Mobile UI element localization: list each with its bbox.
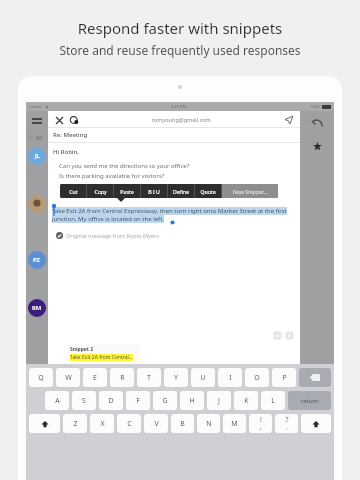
staticText: V — [154, 419, 159, 429]
button[interactable]: PZ — [28, 251, 46, 269]
button[interactable]: L — [261, 391, 285, 410]
staticText: RM — [32, 304, 42, 312]
staticText: tomyoung@gmail.com — [152, 116, 211, 123]
button[interactable]: Cut — [60, 184, 86, 198]
staticText: A — [55, 396, 60, 406]
button[interactable]: H — [180, 391, 204, 410]
button[interactable]: Define — [168, 184, 194, 198]
button[interactable]: JL — [28, 147, 46, 165]
button[interactable]: Copy — [87, 184, 113, 198]
staticText: Q — [38, 373, 44, 383]
button[interactable] — [28, 195, 46, 213]
button[interactable]: Menu — [32, 118, 42, 126]
staticText: Can you send me the directions to your o… — [59, 162, 190, 170]
button[interactable]: Paste — [114, 184, 140, 198]
button[interactable]: S — [72, 391, 96, 410]
staticText: New Snippet... — [233, 188, 268, 195]
staticText: Z — [73, 419, 78, 429]
staticText: junction. My office is located on the le… — [52, 215, 164, 223]
staticText: Quote — [200, 188, 216, 195]
button[interactable]: ! , — [249, 414, 272, 433]
button[interactable]: C — [117, 414, 141, 433]
button[interactable]: New Snippet... — [222, 184, 278, 198]
staticText: D — [108, 396, 114, 406]
button[interactable]: W — [56, 368, 80, 387]
staticText: Y — [174, 373, 178, 383]
staticText: U — [200, 373, 206, 383]
staticText: C — [127, 419, 132, 429]
staticText: Re: Meeting — [53, 131, 88, 139]
staticText: Is there parking available for visitors? — [59, 172, 165, 180]
button[interactable]: O — [245, 368, 269, 387]
button[interactable]: F — [126, 391, 150, 410]
staticText: Carrier — [29, 104, 43, 109]
button[interactable]: Y — [164, 368, 188, 387]
button[interactable]: V — [144, 414, 168, 433]
staticText: Define — [173, 188, 189, 195]
staticText: PZ — [33, 256, 41, 264]
button[interactable]: A — [45, 391, 69, 410]
staticText: Take Exit 2A from Central... — [70, 354, 133, 361]
button[interactable]: U — [191, 368, 215, 387]
staticText: X — [100, 419, 105, 429]
button[interactable]: RM — [28, 299, 46, 317]
button[interactable]: Q — [29, 368, 53, 387]
button[interactable]: Attach — [68, 114, 80, 126]
button[interactable]: Z — [63, 414, 87, 433]
button[interactable]: I — [218, 368, 242, 387]
staticText: Take Exit 2A from Central Expressway, th… — [52, 207, 287, 215]
button[interactable]: T — [137, 368, 161, 387]
staticText: return — [301, 397, 319, 405]
button[interactable]: Shift — [29, 414, 60, 433]
staticText: 2:35 PM — [171, 104, 187, 109]
button[interactable]: B — [171, 414, 194, 433]
staticText: Store and reuse frequently used response… — [0, 42, 360, 58]
staticText: G — [162, 396, 168, 406]
staticText: B — [180, 419, 185, 429]
button[interactable]: Indent — [273, 331, 282, 340]
staticText: E — [93, 373, 97, 383]
button[interactable]: return — [288, 391, 331, 410]
staticText: Paste — [120, 188, 134, 195]
staticText: 100% — [310, 104, 321, 109]
staticText: ! , — [260, 415, 262, 432]
staticText: J — [218, 396, 220, 406]
button[interactable]: Backspace — [299, 368, 331, 387]
button[interactable]: Format — [285, 331, 294, 340]
staticText: S — [82, 396, 86, 406]
button[interactable]: P — [272, 368, 296, 387]
staticText: Snippet 2 — [70, 346, 94, 353]
staticText: O — [254, 373, 260, 383]
button[interactable]: B I U — [141, 184, 167, 198]
button[interactable]: K — [234, 391, 258, 410]
staticText: I — [229, 373, 232, 383]
button[interactable]: Shift — [301, 414, 331, 433]
staticText: Hi Robin, — [53, 148, 79, 156]
button[interactable]: Snippet 2 — [70, 346, 138, 361]
button[interactable]: Close — [53, 114, 65, 126]
button[interactable]: Send — [283, 114, 295, 126]
staticText: Respond faster with snippets — [0, 18, 360, 38]
staticText: JL — [35, 152, 40, 160]
staticText: Original message from Robin Myers — [66, 232, 159, 239]
button[interactable]: R — [110, 368, 134, 387]
button[interactable]: E — [83, 368, 107, 387]
staticText: P — [282, 373, 287, 383]
staticText: M — [231, 419, 238, 429]
button[interactable]: N — [197, 414, 220, 433]
button[interactable]: Star — [310, 139, 324, 153]
staticText: F — [136, 396, 140, 406]
button[interactable]: D — [99, 391, 123, 410]
button[interactable]: G — [153, 391, 177, 410]
staticText: T — [147, 373, 151, 383]
staticText: W — [65, 373, 72, 383]
staticText: K — [244, 396, 249, 406]
button[interactable]: ? . — [275, 414, 298, 433]
button[interactable]: M — [223, 414, 246, 433]
button[interactable]: X — [90, 414, 114, 433]
staticText: N — [206, 419, 212, 429]
button[interactable]: Quote — [195, 184, 221, 198]
staticText: ? . — [285, 415, 289, 432]
button[interactable]: Reply — [310, 116, 324, 130]
button[interactable]: J — [207, 391, 231, 410]
